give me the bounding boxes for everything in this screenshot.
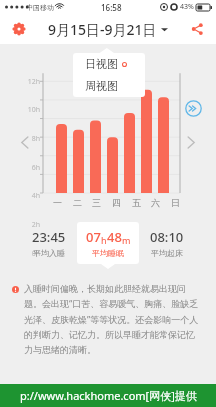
staticText: 平均起床 — [151, 248, 183, 258]
button[interactable]: 周视图 — [73, 75, 145, 97]
staticText: 四 — [112, 197, 121, 208]
staticText: m — [122, 234, 131, 246]
staticText: 日视图 — [85, 57, 118, 71]
staticText: 平均睡眠 — [92, 248, 124, 258]
button[interactable]: 23:45 — [19, 222, 79, 258]
staticText: 日 — [171, 197, 180, 208]
staticText: 23:45 — [32, 228, 66, 246]
staticText: 9月15日-9月21日 — [48, 20, 157, 39]
staticText: 一 — [53, 197, 62, 208]
staticText: 16:58 — [101, 2, 122, 13]
staticText: 6h — [22, 163, 40, 173]
staticText: 二 — [73, 197, 82, 208]
staticText: 三 — [92, 197, 101, 208]
staticText: 08:10 — [150, 228, 184, 246]
button[interactable]: Share — [186, 18, 208, 40]
staticText: 2h — [22, 220, 40, 230]
staticText: 0h — [22, 249, 40, 259]
button[interactable]: 日视图 — [73, 53, 145, 75]
staticText: 8h — [22, 134, 40, 144]
staticText: 平均入睡 — [33, 248, 65, 258]
staticText: p://www.hackhome.com[网侠]提供 — [20, 388, 197, 403]
staticText: 周视图 — [85, 79, 118, 93]
staticText: h — [101, 234, 107, 246]
staticText: 五 — [132, 197, 141, 208]
button[interactable]: 9月15日-9月21日 — [48, 20, 168, 39]
staticText: 43% — [180, 2, 194, 12]
button[interactable]: 07 — [77, 222, 139, 264]
staticText: 10h — [22, 105, 40, 115]
staticText: 入睡时间偏晚，长期如此胆经就易出现问题。会出现“口苦、容易嗳气、胸痛、脸缺乏光泽… — [24, 283, 202, 356]
button[interactable]: Next — [185, 100, 202, 117]
button[interactable]: Settings — [8, 18, 30, 40]
staticText: 六 — [151, 197, 160, 208]
staticText: 48 — [107, 228, 122, 246]
staticText: 07 — [86, 228, 101, 246]
staticText: 中国移动 — [26, 3, 54, 12]
button[interactable]: 08:10 — [137, 222, 197, 258]
staticText: 12h — [22, 77, 40, 87]
staticText: 4h — [22, 191, 40, 201]
